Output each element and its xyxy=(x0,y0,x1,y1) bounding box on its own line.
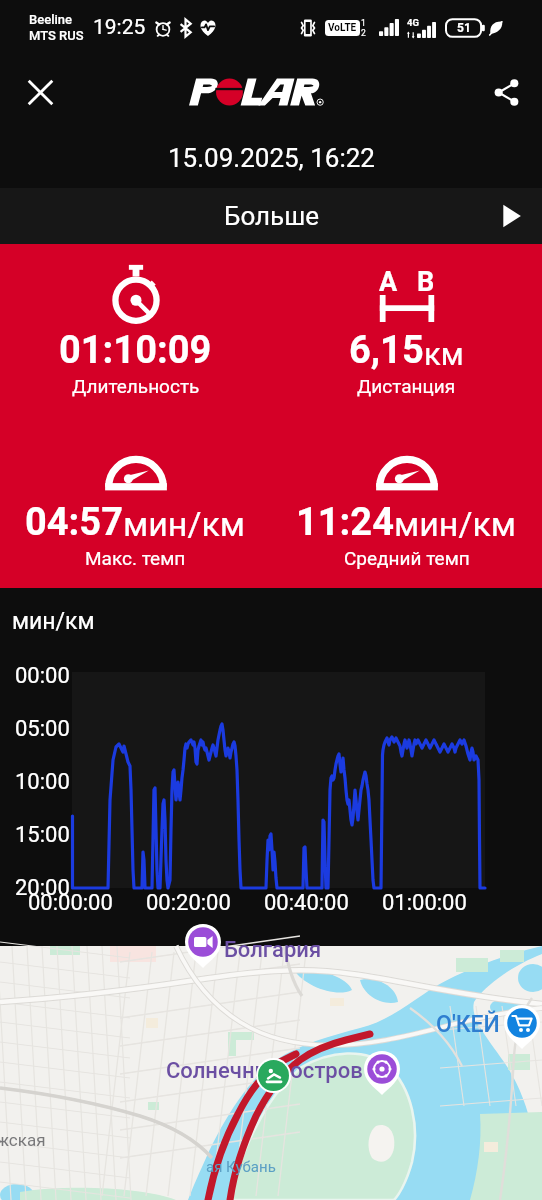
button[interactable]: Больше xyxy=(0,188,542,244)
staticText: 05:00 xyxy=(15,716,70,742)
staticText: Больше xyxy=(224,201,319,231)
staticText: 00:00 xyxy=(15,663,70,689)
staticText: 00:00:00 xyxy=(28,890,113,916)
staticText: мин/км xyxy=(394,504,517,544)
staticText: 00:40:00 xyxy=(264,890,349,916)
staticText: Beeline xyxy=(29,12,73,27)
staticText: 2 xyxy=(361,28,366,38)
staticText: Средний темп xyxy=(344,547,470,569)
staticText: 04:57 xyxy=(25,500,123,545)
staticText: мин/км xyxy=(12,608,95,635)
staticText: 51 xyxy=(457,21,471,35)
button[interactable]: Share xyxy=(482,68,530,116)
staticText: Дистанция xyxy=(357,375,456,397)
staticText: Макс. темп xyxy=(85,547,186,569)
staticText: 1 xyxy=(361,18,366,28)
staticText: Болгария xyxy=(224,937,322,963)
staticText: 4G xyxy=(407,17,419,28)
staticText: жская xyxy=(0,1130,46,1150)
staticText: 6,15 xyxy=(349,328,424,373)
staticText: 11:24 xyxy=(296,500,394,545)
staticText: ая Кубань xyxy=(206,1158,276,1176)
staticText: 20:00 xyxy=(15,875,70,901)
staticText: 01:00:00 xyxy=(382,890,467,916)
button[interactable]: Place marker xyxy=(504,1005,540,1049)
staticText: О'КЕЙ xyxy=(436,1011,500,1038)
staticText: 00:20:00 xyxy=(146,890,231,916)
staticText: B xyxy=(417,266,435,298)
button[interactable]: Place xyxy=(258,1060,289,1091)
staticText: 15.09.2025, 16:22 xyxy=(168,143,375,173)
staticText: мин/км xyxy=(123,504,246,544)
staticText: 10:00 xyxy=(15,769,70,795)
button[interactable]: Place marker xyxy=(185,924,221,968)
staticText: MTS RUS xyxy=(29,28,84,43)
staticText: км xyxy=(424,336,464,372)
staticText: 15:00 xyxy=(15,822,70,848)
staticText: Длительность xyxy=(72,375,200,397)
button[interactable]: Place marker xyxy=(364,1051,400,1095)
button[interactable]: Close xyxy=(16,68,64,116)
staticText: VoLTE xyxy=(328,22,357,34)
staticText: 19:25 xyxy=(93,15,146,40)
staticText: 01:10:09 xyxy=(59,328,212,373)
staticText: Солнечный остров xyxy=(166,1058,363,1084)
staticText: A xyxy=(379,266,398,298)
